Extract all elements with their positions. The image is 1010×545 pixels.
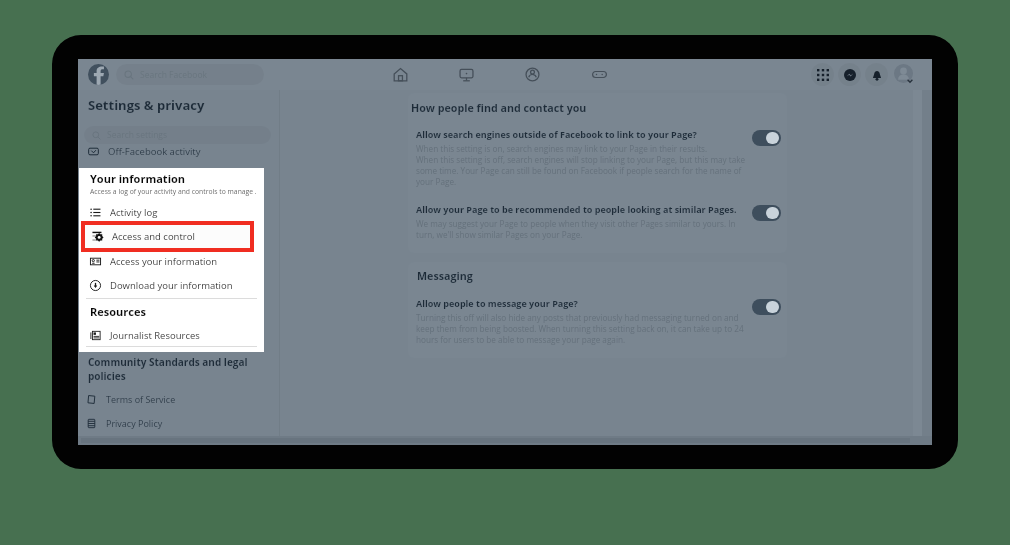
button[interactable]: Toggle: [752, 299, 781, 315]
staticText: Turning this off will also hide any post…: [416, 312, 744, 345]
staticText: Allow your Page to be recommended to peo…: [416, 203, 737, 215]
staticText: Privacy Policy: [106, 417, 163, 429]
button[interactable]: Journalist Resources: [79, 324, 264, 346]
button[interactable]: Menu: [811, 63, 834, 86]
staticText: Settings & privacy: [88, 96, 205, 114]
staticText: Activity log: [110, 206, 158, 219]
staticText: Access your information: [110, 255, 218, 268]
staticText: Journalist Resources: [110, 329, 200, 342]
button[interactable]: Privacy Policy: [84, 414, 274, 432]
button[interactable]: Access your information: [79, 250, 264, 272]
button[interactable]: Toggle: [752, 205, 781, 221]
button[interactable]: Terms of Service: [84, 390, 274, 408]
staticText: Terms of Service: [106, 393, 176, 405]
staticText: When this setting is on, search engines …: [416, 143, 746, 187]
staticText: Community Standards and legal policies: [88, 355, 248, 383]
button[interactable]: Access and control: [85, 225, 250, 248]
staticText: Download your information: [110, 279, 233, 292]
button[interactable]: Messenger: [838, 63, 861, 86]
button[interactable]: Toggle: [752, 130, 781, 146]
staticText: Allow search engines outside of Facebook…: [416, 128, 697, 140]
button[interactable]: Gaming: [580, 59, 618, 90]
button[interactable]: Home: [381, 59, 419, 90]
button[interactable]: Groups: [513, 59, 551, 90]
staticText: Access and control: [112, 230, 195, 243]
staticText: Access a log of your activity and contro…: [90, 187, 257, 196]
staticText: Resources: [90, 304, 146, 319]
staticText: Search Facebook: [140, 69, 207, 81]
button[interactable]: Video: [447, 59, 485, 90]
button[interactable]: Download your information: [79, 274, 264, 296]
button[interactable]: Account: [894, 64, 913, 83]
staticText: We may suggest your Page to people when …: [416, 218, 736, 240]
button[interactable]: Facebook: [88, 64, 109, 85]
button[interactable]: Off-Facebook activity: [88, 143, 275, 159]
button[interactable]: Notifications: [865, 63, 888, 86]
staticText: Your information: [90, 171, 186, 186]
staticText: Allow people to message your Page?: [416, 297, 578, 309]
staticText: How people find and contact you: [411, 101, 587, 116]
button[interactable]: Activity log: [79, 201, 264, 223]
staticText: Off-Facebook activity: [108, 145, 201, 158]
staticText: Messaging: [417, 269, 473, 284]
